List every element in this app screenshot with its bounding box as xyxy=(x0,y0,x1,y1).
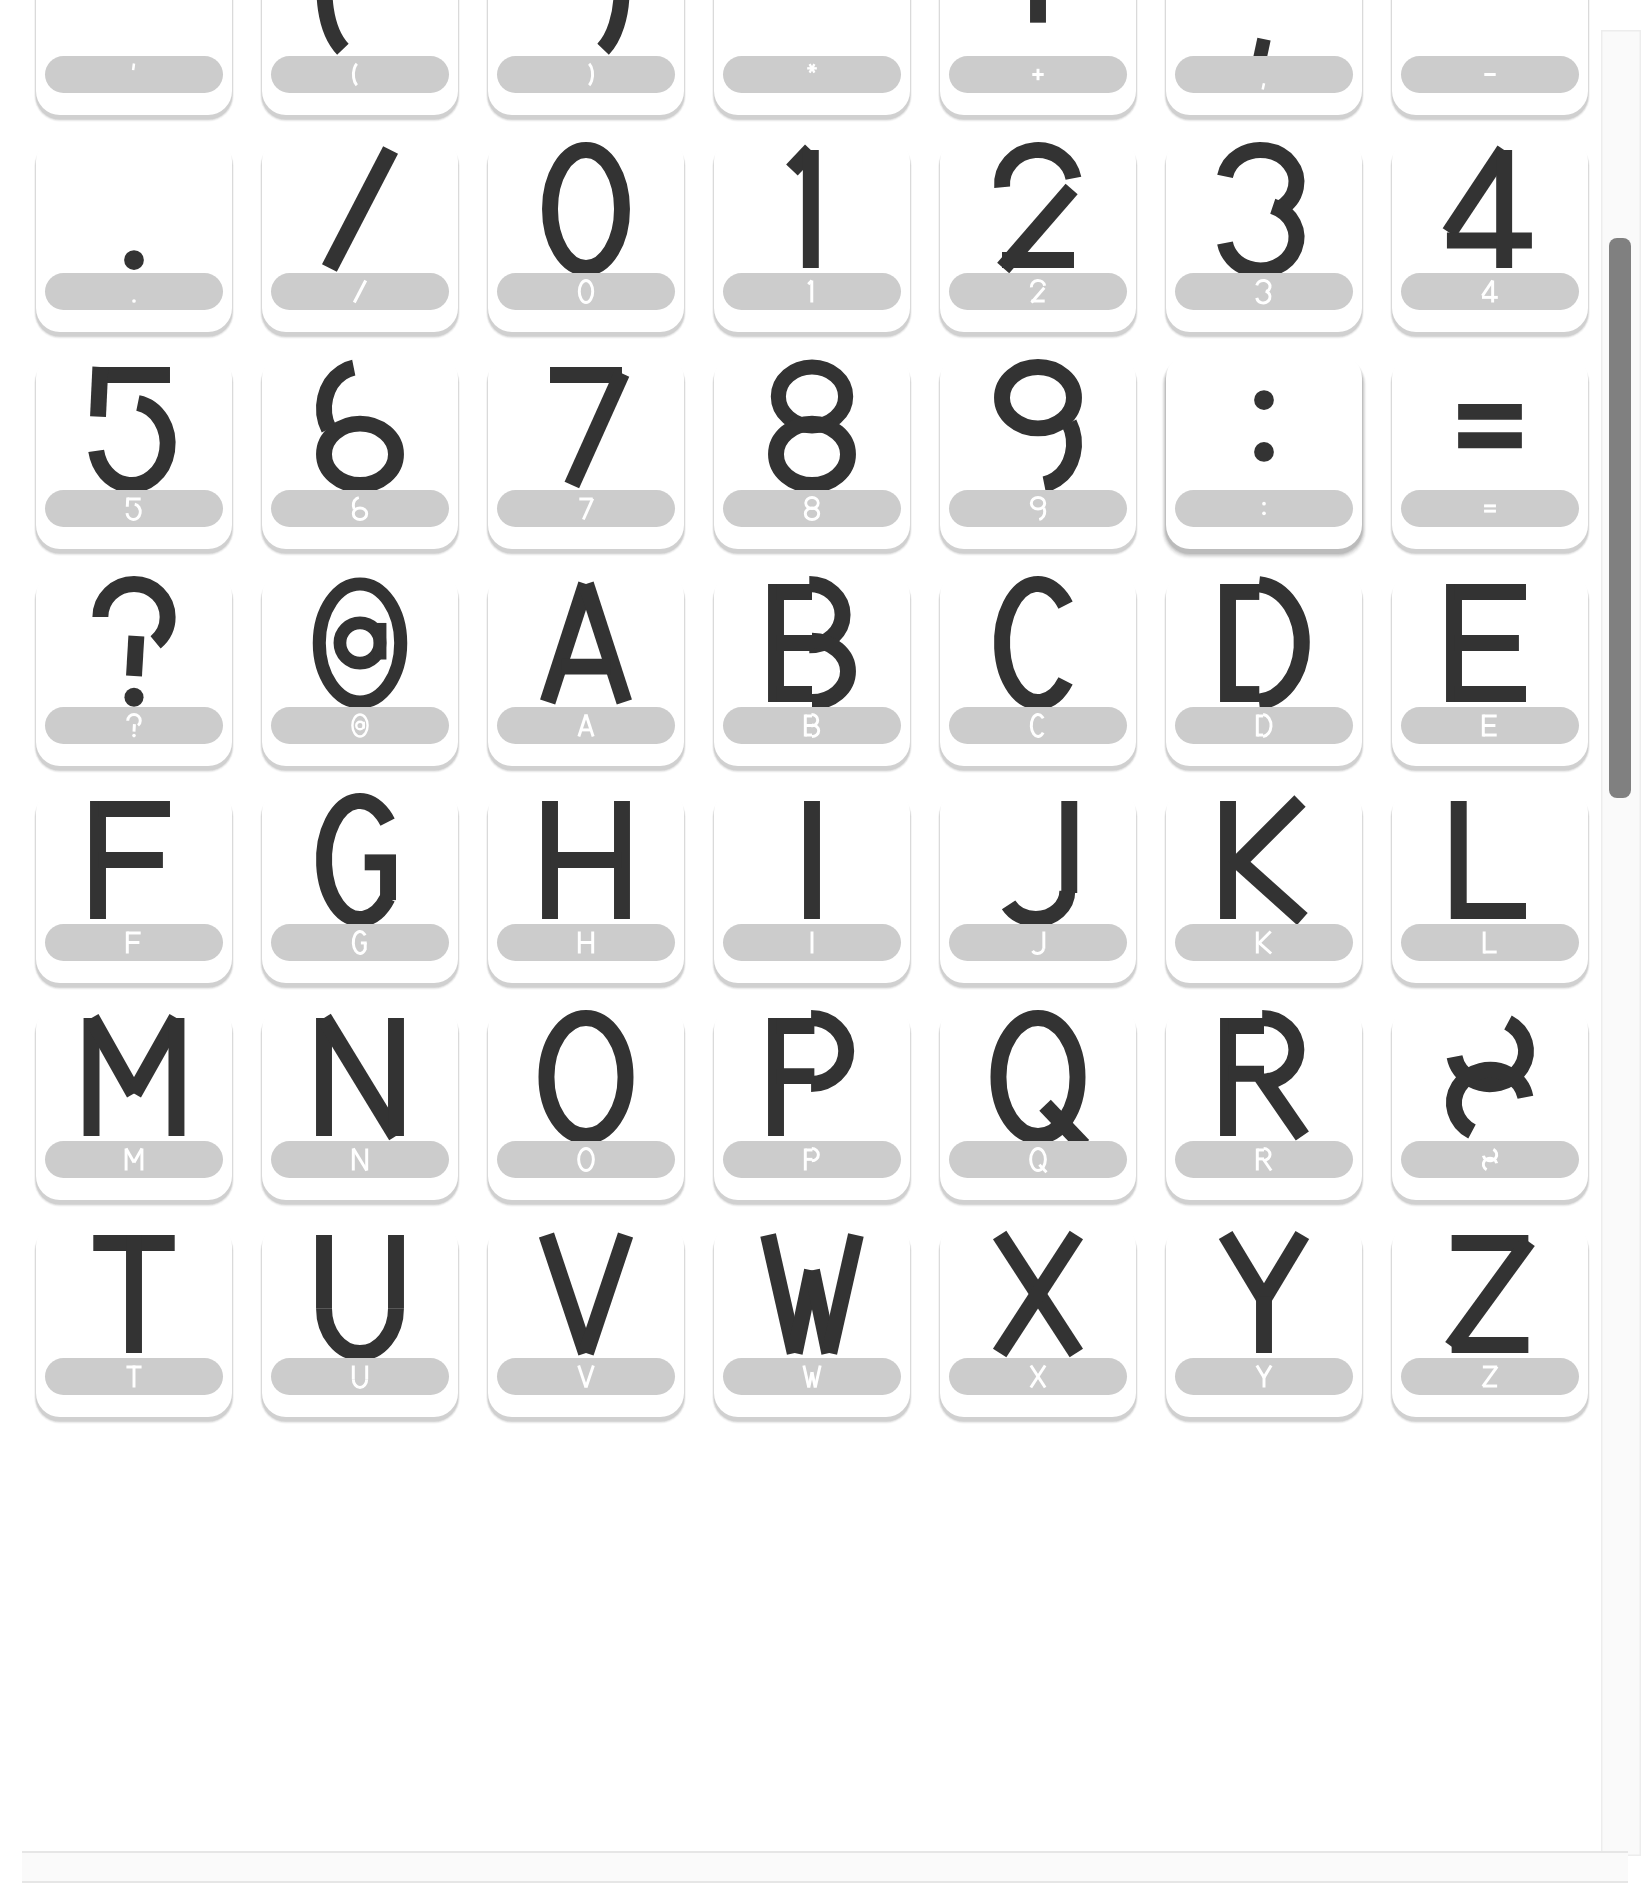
button[interactable]: Key B xyxy=(714,571,910,766)
button[interactable]: Key 4 xyxy=(1392,137,1588,332)
button[interactable]: Key - xyxy=(1392,0,1588,115)
button[interactable]: Key . xyxy=(36,137,232,332)
button[interactable]: Key L xyxy=(1392,788,1588,983)
button[interactable]: Key Z xyxy=(1392,1222,1588,1417)
button[interactable]: Key R xyxy=(1166,1005,1362,1200)
button[interactable]: Key @ xyxy=(262,571,458,766)
button[interactable]: Key ? xyxy=(36,571,232,766)
button[interactable]: Key 8 xyxy=(714,354,910,549)
button[interactable]: Key A xyxy=(488,571,684,766)
button[interactable]: Key W xyxy=(714,1222,910,1417)
button[interactable]: Key ( xyxy=(262,0,458,115)
button[interactable]: Key 0 xyxy=(488,137,684,332)
button[interactable]: Key ) xyxy=(488,0,684,115)
button[interactable]: Key I xyxy=(714,788,910,983)
button[interactable]: Key , xyxy=(1166,0,1362,115)
button[interactable]: Key G xyxy=(262,788,458,983)
button[interactable]: Key V xyxy=(488,1222,684,1417)
button[interactable]: Key Y xyxy=(1166,1222,1362,1417)
button[interactable]: Key = xyxy=(1392,354,1588,549)
button[interactable]: Key N xyxy=(262,1005,458,1200)
button[interactable]: Key C xyxy=(940,571,1136,766)
button[interactable]: Key 3 xyxy=(1166,137,1362,332)
button[interactable]: Key T xyxy=(36,1222,232,1417)
button[interactable]: Key S xyxy=(1392,1005,1588,1200)
button[interactable]: Key J xyxy=(940,788,1136,983)
button[interactable]: Key 9 xyxy=(940,354,1136,549)
button[interactable]: Key * xyxy=(714,0,910,115)
button[interactable]: Key P xyxy=(714,1005,910,1200)
button[interactable]: Key / xyxy=(262,137,458,332)
button[interactable]: Key D xyxy=(1166,571,1362,766)
button[interactable]: Key F xyxy=(36,788,232,983)
button[interactable]: Key 2 xyxy=(940,137,1136,332)
button[interactable]: Key H xyxy=(488,788,684,983)
button[interactable]: Key 5 xyxy=(36,354,232,549)
button[interactable]: Key K xyxy=(1166,788,1362,983)
button[interactable]: Key 6 xyxy=(262,354,458,549)
button[interactable]: Key 1 xyxy=(714,137,910,332)
button[interactable]: Key Q xyxy=(940,1005,1136,1200)
button[interactable]: Key X xyxy=(940,1222,1136,1417)
button[interactable]: Key M xyxy=(36,1005,232,1200)
button[interactable]: Key 7 xyxy=(488,354,684,549)
button[interactable]: Key + xyxy=(940,0,1136,115)
button[interactable]: Key E xyxy=(1392,571,1588,766)
button[interactable]: Key O xyxy=(488,1005,684,1200)
button[interactable]: Key U xyxy=(262,1222,458,1417)
button[interactable]: Key ' xyxy=(36,0,232,115)
button[interactable]: Key : xyxy=(1166,354,1362,549)
